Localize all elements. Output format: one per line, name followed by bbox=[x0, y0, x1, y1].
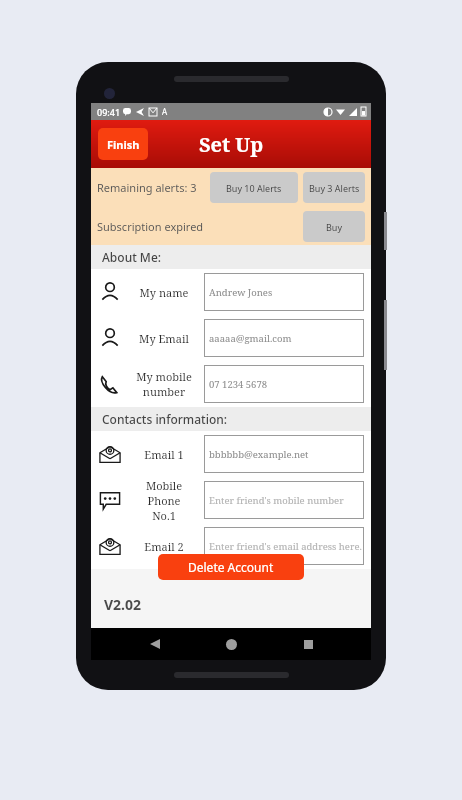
staticText: Mobile Phone No.1 bbox=[128, 478, 200, 523]
staticText: Contacts information: bbox=[102, 411, 228, 427]
staticText: Buy 3 Alerts bbox=[309, 182, 360, 194]
button[interactable]: Recents bbox=[295, 631, 321, 657]
staticText: Set Up bbox=[199, 131, 264, 158]
staticText: Email 1 bbox=[128, 447, 200, 462]
staticText: bbbbbb@example.net bbox=[209, 448, 309, 461]
staticText: 07 1234 5678 bbox=[209, 378, 268, 391]
button[interactable]: Delete Account bbox=[158, 554, 304, 580]
other: Phone bbox=[98, 372, 122, 396]
other: Person bbox=[98, 280, 122, 304]
other: Person bbox=[98, 326, 122, 350]
button[interactable]: bbbbbb@example.net bbox=[204, 435, 364, 473]
staticText: My Email bbox=[128, 331, 200, 346]
button[interactable]: 07 1234 5678 bbox=[204, 365, 364, 403]
other: Email bbox=[98, 534, 122, 558]
staticText: Email 2 bbox=[128, 539, 200, 554]
button[interactable]: aaaaa@gmail.com bbox=[204, 319, 364, 357]
button[interactable]: Buy bbox=[303, 211, 365, 242]
staticText: Buy 10 Alerts bbox=[226, 182, 282, 194]
staticText: Subscription expired bbox=[97, 219, 303, 234]
other: Email bbox=[98, 442, 122, 466]
staticText: 09:41 bbox=[97, 106, 121, 118]
button[interactable]: Back bbox=[142, 631, 168, 657]
staticText: A bbox=[162, 106, 168, 117]
staticText: My mobile number bbox=[128, 369, 200, 399]
button[interactable]: Enter friend's email address here. bbox=[204, 527, 364, 565]
staticText: Remaining alerts: 3 bbox=[97, 180, 210, 195]
button[interactable]: Buy 3 Alerts bbox=[303, 172, 365, 203]
staticText: Buy bbox=[326, 221, 343, 233]
button[interactable]: Home bbox=[218, 631, 244, 657]
button[interactable]: Buy 10 Alerts bbox=[210, 172, 298, 203]
staticText: My name bbox=[128, 285, 200, 300]
button[interactable]: Andrew Jones bbox=[204, 273, 364, 311]
staticText: About Me: bbox=[102, 249, 162, 265]
staticText: aaaaa@gmail.com bbox=[209, 332, 292, 345]
button[interactable]: Finish bbox=[98, 128, 148, 160]
staticText: V2.02 bbox=[104, 595, 142, 614]
staticText: Delete Account bbox=[188, 559, 274, 575]
staticText: Andrew Jones bbox=[209, 286, 273, 299]
button[interactable]: Enter friend's mobile number bbox=[204, 481, 364, 519]
staticText: Enter friend's email address here. bbox=[209, 540, 362, 553]
staticText: Enter friend's mobile number bbox=[209, 494, 344, 507]
other: Message bbox=[98, 488, 122, 512]
staticText: Finish bbox=[107, 137, 140, 152]
